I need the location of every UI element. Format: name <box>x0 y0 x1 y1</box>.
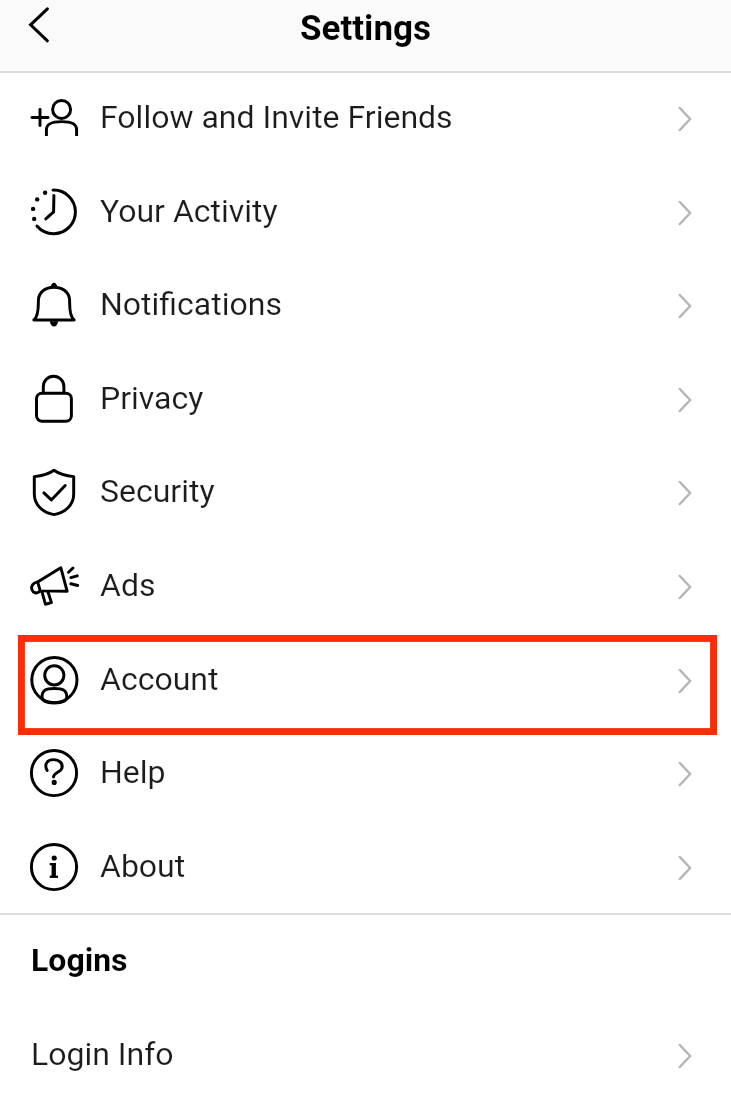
button[interactable]: Help <box>0 726 731 820</box>
button[interactable]: Notifications <box>0 258 731 352</box>
staticText: Settings <box>0 8 731 49</box>
button[interactable]: Your Activity <box>0 165 731 259</box>
staticText: Ads <box>100 566 156 604</box>
staticText: Privacy <box>100 379 204 417</box>
staticText: Help <box>100 753 166 791</box>
staticText: Login Info <box>31 1035 174 1073</box>
staticText: Notifications <box>100 285 282 323</box>
staticText: Security <box>100 472 215 510</box>
staticText: About <box>100 847 186 885</box>
button[interactable]: Follow and Invite Friends <box>0 71 731 165</box>
staticText: Follow and Invite Friends <box>100 98 453 136</box>
button[interactable]: Login Info <box>0 1008 731 1102</box>
button[interactable]: Account <box>0 633 731 727</box>
button[interactable]: Back <box>9 0 67 60</box>
button[interactable]: About <box>0 820 731 914</box>
button[interactable]: Security <box>0 445 731 539</box>
staticText: Logins <box>31 941 128 979</box>
button[interactable]: Ads <box>0 539 731 633</box>
staticText: Account <box>100 660 219 698</box>
button[interactable]: Privacy <box>0 352 731 446</box>
staticText: Your Activity <box>100 192 278 230</box>
